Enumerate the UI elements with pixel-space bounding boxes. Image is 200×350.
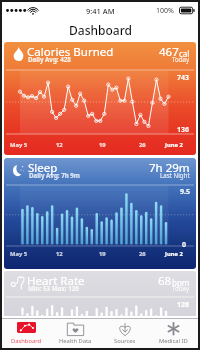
staticText: Health Data: [59, 337, 92, 345]
button[interactable]: Sources: [100, 319, 149, 348]
staticText: Sources: [114, 337, 136, 345]
staticText: Today: [172, 284, 190, 292]
staticText: Min: 53 Max: 126: [28, 284, 79, 292]
staticText: May 5: [10, 141, 28, 149]
staticText: 68: [158, 273, 172, 289]
staticText: 9:41 AM: [86, 6, 115, 16]
staticText: 467: [159, 44, 179, 60]
staticText: bpm: [172, 277, 190, 288]
staticText: 126: [177, 300, 190, 310]
staticText: 26: [139, 141, 146, 149]
staticText: 136: [177, 125, 190, 135]
staticText: 7h 29m: [149, 160, 190, 176]
staticText: Dashboard: [11, 337, 42, 345]
button[interactable]: Health Data: [51, 319, 100, 348]
staticText: Calories Burned: [27, 44, 114, 60]
staticText: Medical ID: [159, 337, 188, 345]
button[interactable]: Heart Rate: [4, 271, 196, 316]
staticText: 100%: [156, 6, 174, 16]
staticText: Heart Rate: [27, 273, 85, 289]
staticText: Last Night: [160, 171, 190, 179]
staticText: Daily Avg: 428: [28, 55, 71, 63]
staticText: 26: [139, 250, 146, 258]
staticText: June 2: [165, 250, 183, 258]
button[interactable]: Medical ID: [149, 319, 198, 348]
staticText: 12: [56, 141, 63, 149]
button[interactable]: Calories Burned: [4, 42, 196, 155]
staticText: 743: [177, 73, 190, 83]
staticText: 9.5: [180, 187, 190, 197]
staticText: 19: [99, 141, 106, 149]
staticText: Daily Avg: 7h 9m: [29, 171, 80, 179]
button[interactable]: Sleep: [4, 158, 196, 269]
staticText: May 5: [10, 250, 28, 258]
staticText: Dashboard: [69, 22, 132, 38]
button[interactable]: Dashboard: [2, 319, 51, 348]
staticText: 12: [56, 250, 63, 258]
staticText: Today: [172, 55, 190, 63]
staticText: June 2: [165, 141, 183, 149]
staticText: cal: [179, 48, 190, 59]
staticText: 19: [99, 250, 106, 258]
staticText: 0: [182, 240, 187, 250]
staticText: Sleep: [28, 160, 58, 176]
